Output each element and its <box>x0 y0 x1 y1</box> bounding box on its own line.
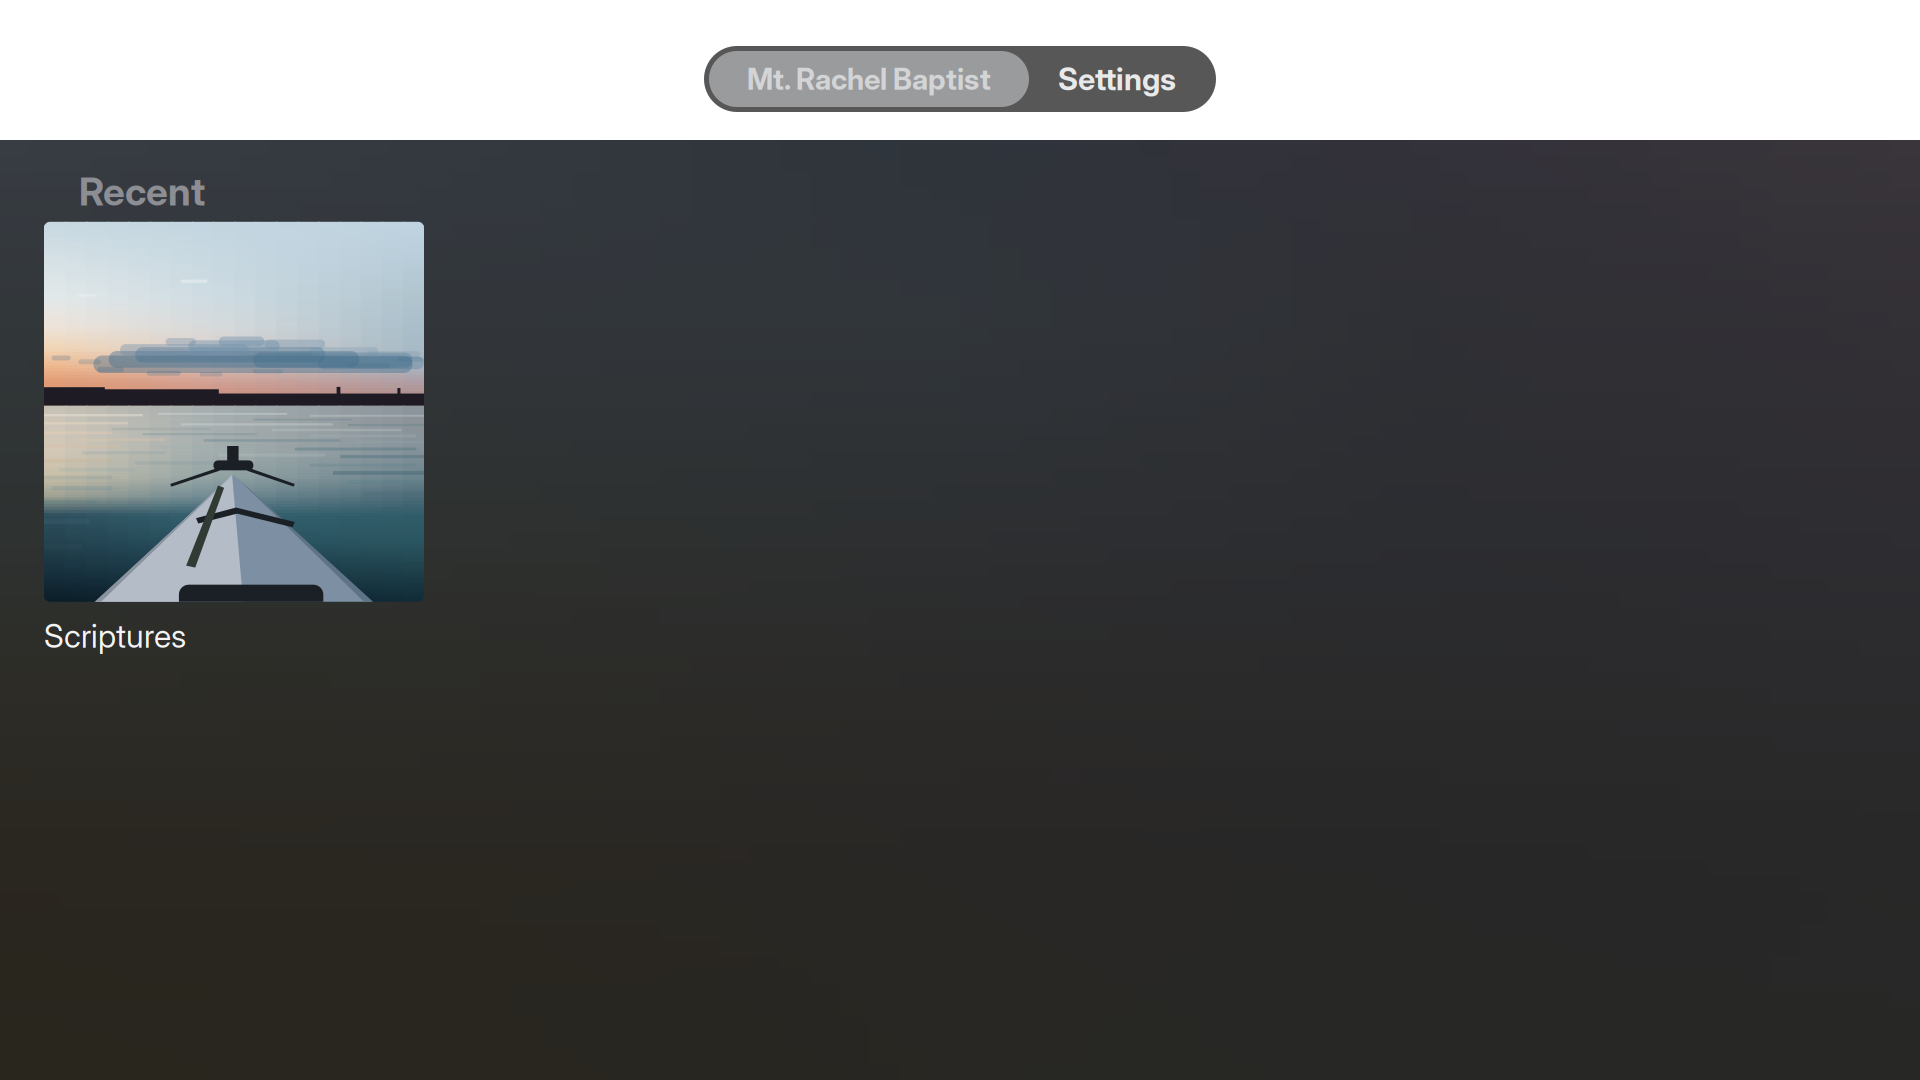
staticText: Settings <box>1058 60 1176 97</box>
staticText: Recent <box>79 168 205 215</box>
button[interactable]: Settings <box>1029 51 1211 107</box>
staticText: Scriptures <box>44 617 186 655</box>
button[interactable]: Scriptures <box>0 215 424 655</box>
button[interactable]: Mt. Rachel Baptist <box>709 51 1029 107</box>
staticText: Mt. Rachel Baptist <box>747 61 991 97</box>
